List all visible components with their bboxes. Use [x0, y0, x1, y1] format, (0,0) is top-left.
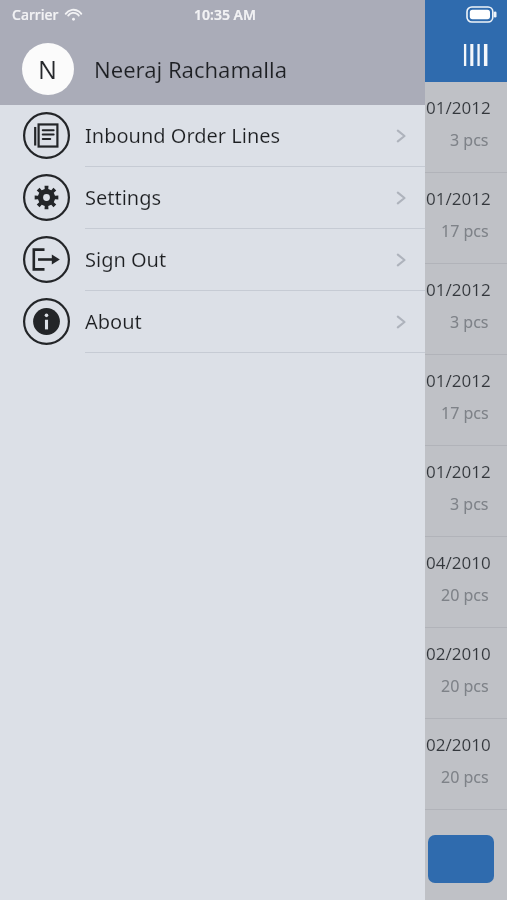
button[interactable]: 02/2010: [0, 628, 507, 719]
button[interactable]: Inbound Order Lines: [0, 105, 425, 166]
button[interactable]: Sign Out: [0, 229, 425, 290]
staticText: 20 pcs: [441, 766, 489, 788]
button[interactable]: 01/2012: [0, 355, 507, 446]
staticText: N: [38, 52, 58, 86]
staticText: 01/2012: [426, 369, 491, 392]
staticText: 17 pcs: [441, 220, 489, 242]
staticText: 10:35 AM: [194, 5, 256, 24]
staticText: 3 pcs: [450, 311, 489, 333]
button[interactable]: About: [0, 291, 425, 352]
staticText: 20 pcs: [441, 675, 489, 697]
staticText: 04/2010: [426, 551, 491, 574]
button[interactable]: Confirm: [428, 835, 494, 883]
staticText: 17 pcs: [441, 402, 489, 424]
staticText: 01/2012: [426, 460, 491, 483]
staticText: 01/2012: [426, 278, 491, 301]
button[interactable]: 01/2012: [0, 446, 507, 537]
staticText: 3 pcs: [450, 493, 489, 515]
button[interactable]: 04/2010: [0, 537, 507, 628]
staticText: Inbound Order Lines: [85, 122, 281, 149]
staticText: Neeraj Rachamalla: [94, 54, 288, 84]
staticText: 01/2012: [426, 96, 491, 119]
staticText: 3 pcs: [450, 129, 489, 151]
button[interactable]: 02/2010: [0, 719, 507, 810]
staticText: 20 pcs: [441, 584, 489, 606]
button[interactable]: 01/2012: [0, 82, 507, 173]
staticText: 02/2010: [426, 642, 491, 665]
staticText: Settings: [85, 184, 162, 211]
staticText: 02/2010: [426, 733, 491, 756]
button[interactable]: Settings: [0, 167, 425, 228]
staticText: Carrier: [12, 5, 59, 24]
button[interactable]: N: [22, 43, 425, 95]
button[interactable]: 01/2012: [0, 173, 507, 264]
button[interactable]: 01/2012: [0, 264, 507, 355]
staticText: Sign Out: [85, 246, 167, 273]
staticText: 01/2012: [426, 187, 491, 210]
button[interactable]: Scan barcode: [459, 38, 493, 72]
staticText: About: [85, 308, 142, 335]
